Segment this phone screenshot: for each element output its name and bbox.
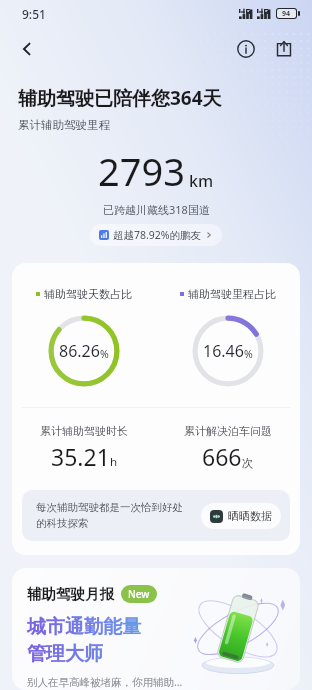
staticText: h xyxy=(110,454,118,470)
staticText: 2793 xyxy=(98,145,185,197)
staticText: 累计辅助驾驶里程 xyxy=(18,118,110,132)
staticText: 94 xyxy=(282,9,291,18)
button[interactable]: 晒晒数据 xyxy=(201,503,281,529)
staticText: 辅助驾驶里程占比 xyxy=(188,287,276,301)
staticText: 35.21 xyxy=(51,441,110,472)
staticText: 86.26 xyxy=(59,340,100,362)
staticText: 超越78.92%的鹏友 xyxy=(113,228,202,242)
staticText: 已跨越川藏线318国道 xyxy=(103,202,210,217)
staticText: 辅助驾驶天数占比 xyxy=(44,287,132,301)
staticText: km xyxy=(189,170,214,192)
staticText: 晒晒数据 xyxy=(228,509,272,523)
staticText: 累计解决泊车问题 xyxy=(184,424,272,438)
button[interactable]: Info xyxy=(230,33,262,65)
staticText: 9:51 xyxy=(22,6,46,22)
staticText: 辅助驾驶已陪伴您364天 xyxy=(18,85,222,111)
staticText: % xyxy=(100,347,109,361)
button[interactable]: 辅助驾驶月报 xyxy=(12,568,300,690)
button[interactable]: 超越78.92%的鹏友 xyxy=(90,224,222,246)
staticText: 辅助驾驶月报 xyxy=(27,585,114,603)
staticText: % xyxy=(244,347,253,361)
staticText: 城市通勤能量 xyxy=(27,615,141,639)
staticText: 每次辅助驾驶都是一次恰到好处的科技探索 xyxy=(36,501,193,530)
staticText: New xyxy=(128,587,150,601)
staticText: 管理大师 xyxy=(27,642,103,666)
button[interactable]: Share xyxy=(268,33,300,65)
staticText: 别人在早高峰被堵麻，你用辅助… xyxy=(27,675,183,689)
staticText: 累计辅助驾驶时长 xyxy=(40,424,128,438)
staticText: 16.46 xyxy=(203,340,244,362)
staticText: 666 xyxy=(202,441,242,472)
staticText: 次 xyxy=(242,456,254,470)
button[interactable]: Back xyxy=(10,32,44,66)
